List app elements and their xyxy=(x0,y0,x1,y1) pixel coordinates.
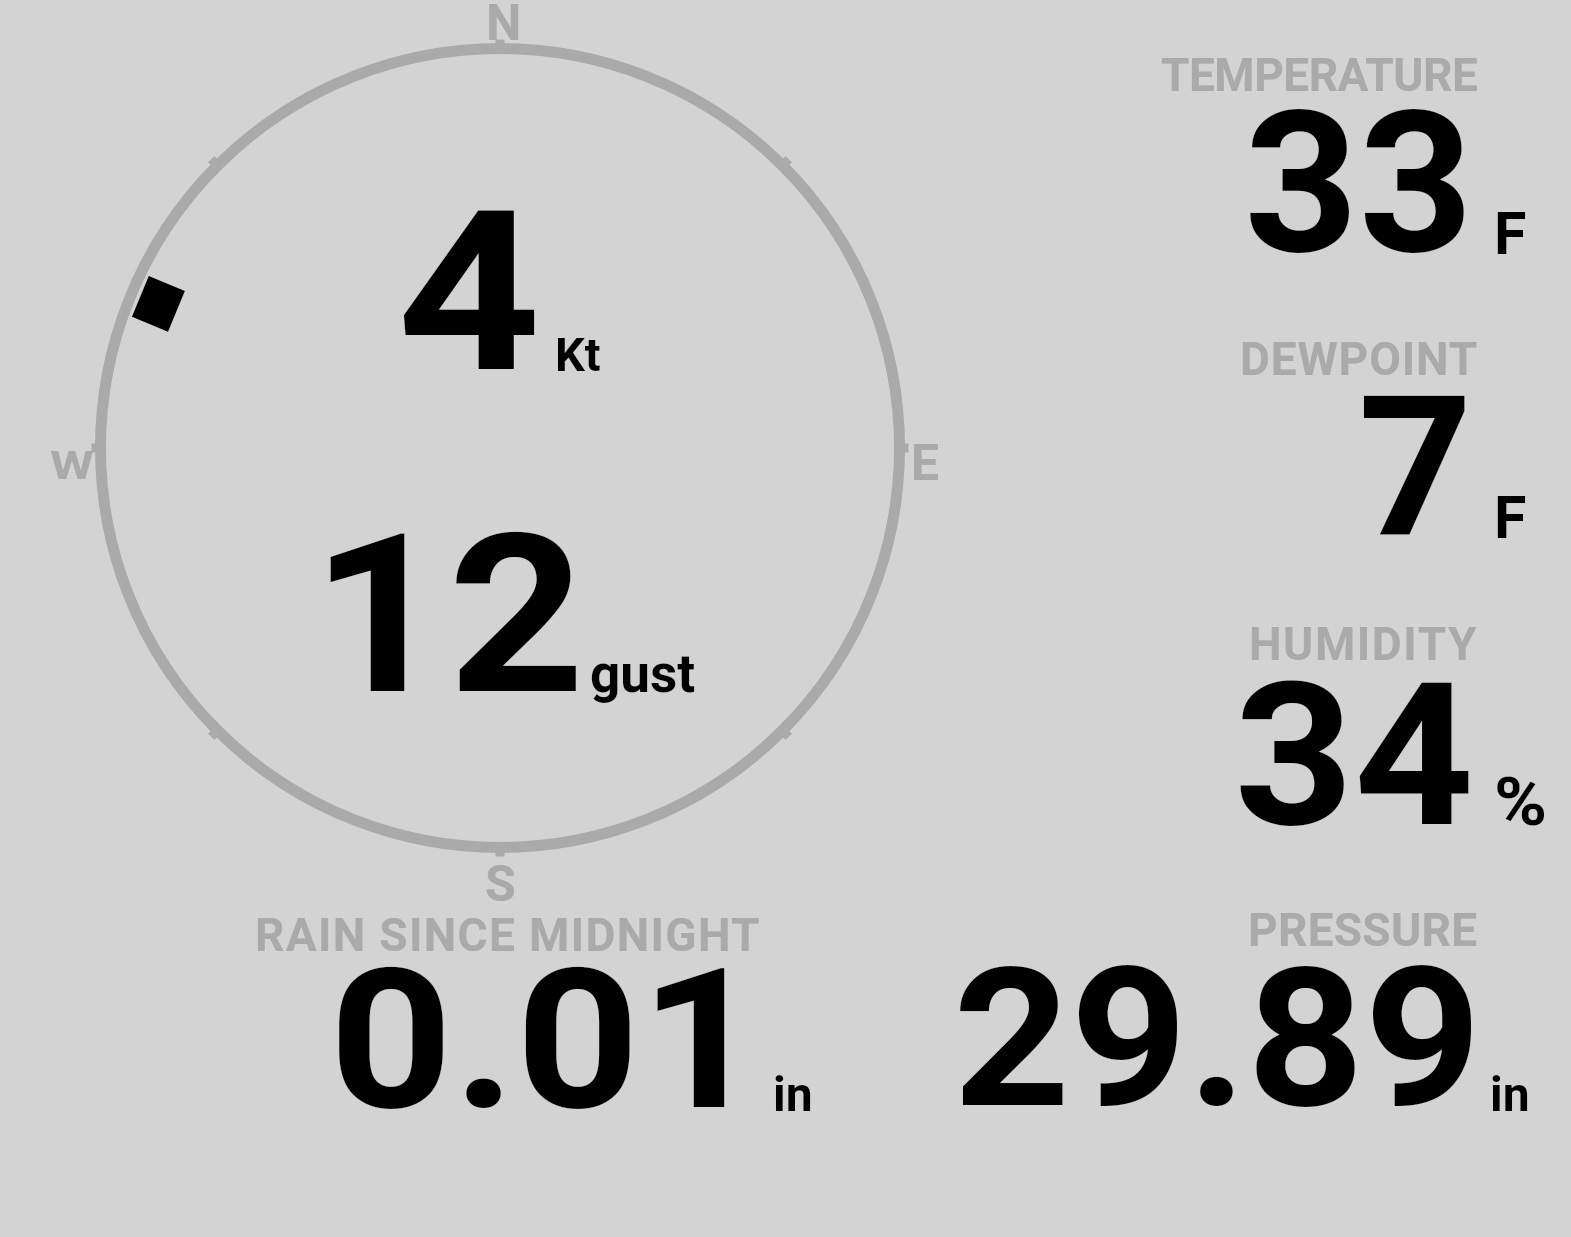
staticText: S xyxy=(485,855,516,914)
staticText: E xyxy=(911,434,940,493)
button[interactable]: Wind 4 knots, gusting 12, from west nort… xyxy=(95,44,905,854)
staticText: in xyxy=(1490,1066,1530,1122)
staticText: F xyxy=(1494,483,1527,552)
staticText: in xyxy=(773,1066,813,1122)
staticText: DEWPOINT xyxy=(1240,332,1479,386)
staticText: 33 xyxy=(1244,69,1474,298)
button[interactable]: Temperature 33 F xyxy=(1120,40,1571,320)
staticText: 12 xyxy=(311,485,585,744)
button[interactable]: Rain since midnight 0.01 in xyxy=(230,900,830,1125)
staticText: TEMPERATURE xyxy=(1161,48,1478,102)
staticText: N xyxy=(486,0,522,53)
staticText: Kt xyxy=(555,327,601,382)
staticText: HUMIDITY xyxy=(1249,617,1479,671)
button[interactable]: Dewpoint 7 F xyxy=(1120,325,1571,605)
staticText: 34 xyxy=(1234,639,1475,872)
staticText: F xyxy=(1494,199,1527,268)
button[interactable]: Humidity 34 % xyxy=(1120,610,1571,890)
staticText: gust xyxy=(590,643,696,705)
staticText: W xyxy=(50,443,94,489)
staticText: % xyxy=(1494,763,1548,840)
staticText: 0.01 xyxy=(329,925,764,1154)
staticText: RAIN SINCE MIDNIGHT xyxy=(255,908,761,962)
staticText: 29.89 xyxy=(953,925,1482,1151)
staticText: PRESSURE xyxy=(1248,903,1478,957)
staticText: 4 xyxy=(397,162,541,422)
staticText: 7 xyxy=(1358,353,1473,582)
button[interactable]: Pressure 29.89 in xyxy=(900,895,1540,1125)
